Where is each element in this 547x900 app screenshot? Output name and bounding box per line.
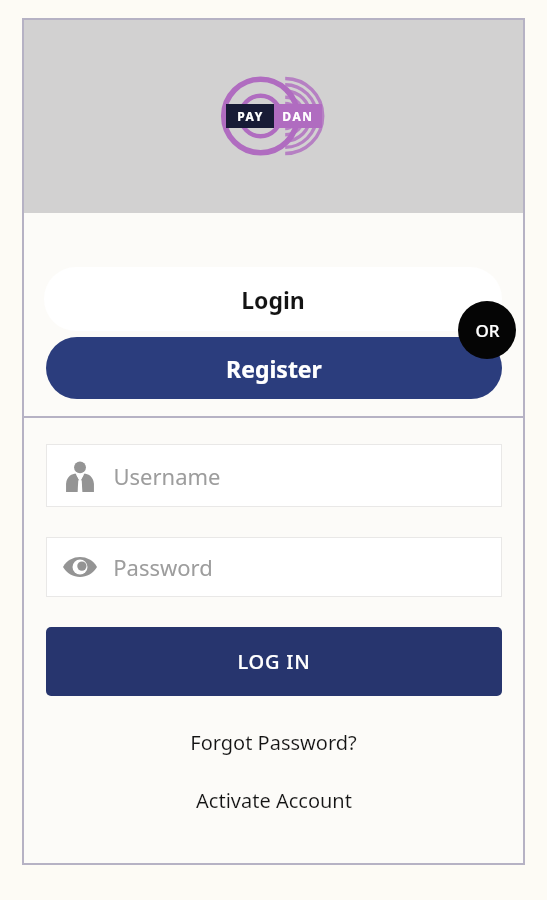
button[interactable]: Username: [46, 444, 502, 507]
staticText: OR: [475, 319, 500, 342]
staticText: LOG IN: [237, 648, 311, 675]
other: Username: [63, 460, 97, 492]
button[interactable]: Show password: [46, 537, 502, 597]
staticText: Register: [226, 353, 322, 384]
button[interactable]: Activate Account: [22, 778, 525, 822]
button[interactable]: Forgot Password?: [22, 720, 525, 764]
other: Show password: [63, 556, 97, 578]
button[interactable]: Login: [44, 267, 502, 331]
button[interactable]: OR: [458, 301, 516, 359]
staticText: DAN: [282, 108, 314, 124]
staticText: Password: [113, 552, 213, 582]
staticText: Activate Account: [196, 787, 352, 814]
staticText: Username: [113, 461, 221, 491]
staticText: PAY: [237, 108, 264, 124]
button[interactable]: LOG IN: [46, 627, 502, 696]
button[interactable]: Register: [46, 337, 502, 399]
staticText: Forgot Password?: [190, 729, 357, 756]
staticText: Login: [241, 284, 305, 315]
